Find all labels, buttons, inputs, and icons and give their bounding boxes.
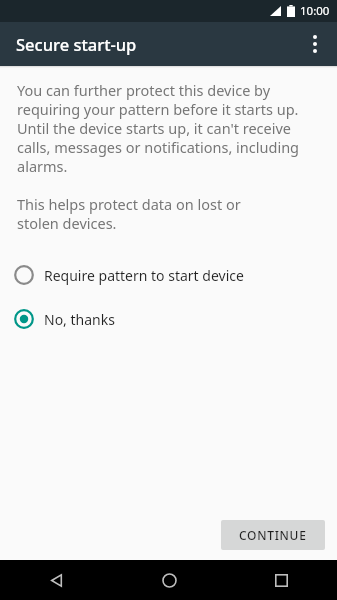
button[interactable]: Recent apps — [225, 560, 337, 600]
button[interactable]: Home — [113, 560, 225, 600]
staticText: 10:00 — [300, 3, 330, 19]
staticText: This helps protect data on lost or stole… — [17, 194, 247, 234]
button[interactable]: No, thanks — [0, 304, 337, 334]
button[interactable]: More options — [293, 22, 337, 66]
staticText: CONTINUE — [239, 527, 307, 543]
button[interactable]: Back — [0, 560, 113, 600]
staticText: You can further protect this device by r… — [17, 80, 319, 177]
button[interactable]: CONTINUE — [221, 520, 325, 550]
staticText: Secure start-up — [16, 33, 137, 55]
button[interactable]: Require pattern to start device — [0, 260, 337, 290]
staticText: Require pattern to start device — [44, 266, 244, 285]
staticText: No, thanks — [44, 310, 115, 329]
